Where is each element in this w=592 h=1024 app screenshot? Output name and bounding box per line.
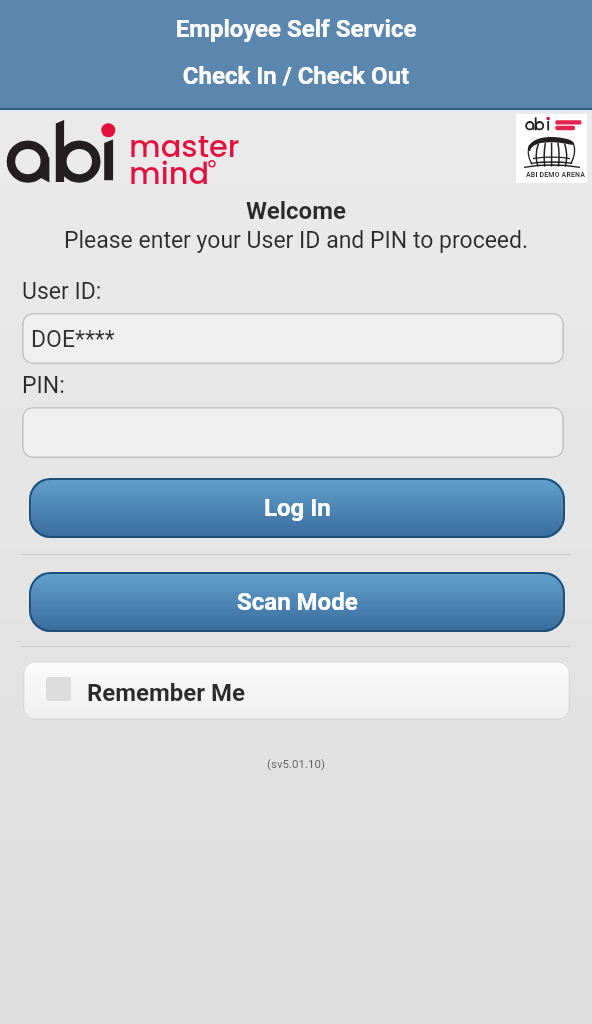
staticText: DOE**** (31, 326, 115, 353)
button[interactable]: Log In (29, 478, 565, 538)
staticText: User ID: (22, 278, 102, 305)
staticText: ABI DEMO ARENA (526, 171, 586, 179)
button[interactable]: ABI Demo Arena logo (516, 114, 587, 183)
staticText: Log In (264, 494, 331, 522)
staticText: Scan Mode (237, 588, 358, 616)
staticText: Please enter your User ID and PIN to pro… (0, 227, 592, 254)
button[interactable]: Remember Me (23, 661, 570, 720)
staticText: master (129, 125, 240, 168)
staticText: (sv5.01.10) (0, 757, 592, 770)
staticText: mind (129, 152, 210, 195)
button[interactable]: Scan Mode (29, 572, 565, 632)
staticText: Welcome (0, 197, 592, 225)
staticText: Employee Self Service (0, 15, 592, 43)
button[interactable]: PIN input (22, 407, 564, 458)
staticText: Remember Me (87, 679, 246, 707)
staticText: PIN: (22, 372, 65, 399)
staticText: Check In / Check Out (0, 62, 592, 90)
button[interactable]: User ID input (22, 313, 564, 364)
